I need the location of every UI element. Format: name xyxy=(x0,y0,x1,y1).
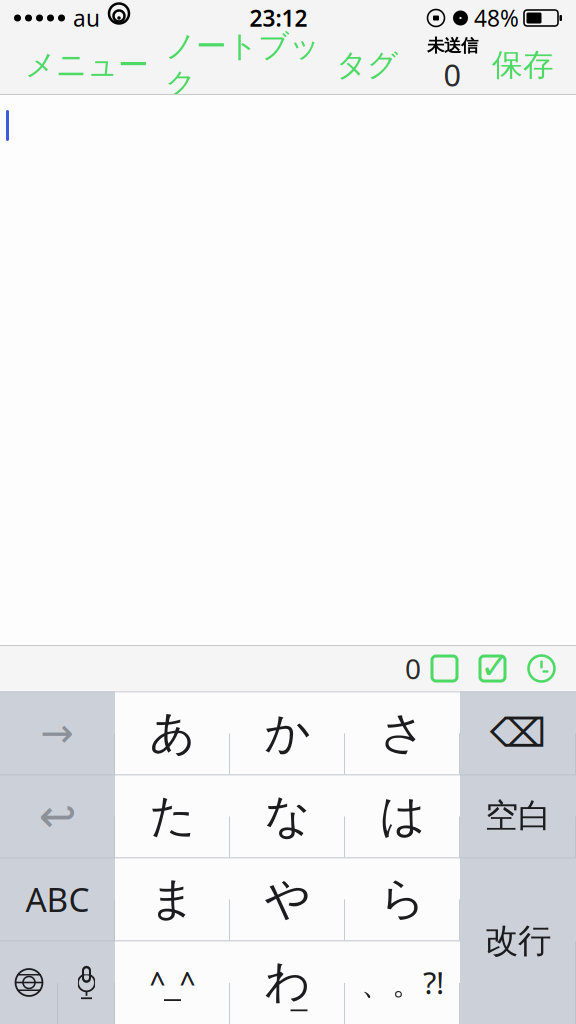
staticText: あ xyxy=(149,705,195,761)
button[interactable]: さ xyxy=(345,691,460,774)
button[interactable]: わ xyxy=(230,940,345,1024)
staticText: ま xyxy=(149,871,195,927)
staticText: な xyxy=(264,788,310,844)
staticText: さ xyxy=(379,705,425,761)
staticText: か xyxy=(264,705,310,761)
button[interactable]: か xyxy=(230,691,345,774)
button[interactable]: メニュー xyxy=(17,37,157,93)
staticText: 空白 xyxy=(485,795,551,836)
staticText: わ xyxy=(264,954,310,1009)
staticText: ABC xyxy=(25,877,89,921)
button[interactable]: Delete xyxy=(460,691,576,774)
staticText: ⌫ xyxy=(489,710,546,756)
button[interactable]: ま xyxy=(115,857,230,940)
button[interactable]: Undo xyxy=(0,774,115,857)
button[interactable]: タグ xyxy=(328,37,406,93)
button[interactable]: 未送信 xyxy=(421,35,484,95)
button[interactable]: あ xyxy=(115,691,230,774)
staticText: ^ ^ xyxy=(149,964,195,1001)
staticText: 23:12 xyxy=(249,3,307,33)
staticText: ↩ xyxy=(38,790,76,842)
button[interactable]: Checked checkbox xyxy=(468,646,517,691)
staticText: メニュー xyxy=(25,46,149,84)
button[interactable]: 保存 xyxy=(484,37,562,93)
button[interactable]: Next keyboard xyxy=(0,940,58,1024)
staticText: 0 xyxy=(443,54,461,95)
button[interactable]: ノートブック xyxy=(157,18,328,112)
button[interactable]: 空白 xyxy=(460,774,576,857)
button[interactable]: 、。?! xyxy=(345,940,460,1024)
button[interactable]: ABC xyxy=(0,857,115,940)
button[interactable]: Emoticon xyxy=(115,940,230,1024)
button[interactable]: Insert time xyxy=(517,646,566,691)
staticText: ノートブック xyxy=(165,27,320,103)
staticText: 0 xyxy=(405,650,421,687)
button[interactable]: や xyxy=(230,857,345,940)
button[interactable]: Next candidate xyxy=(0,691,115,774)
button[interactable]: た xyxy=(115,774,230,857)
staticText: 、。?! xyxy=(361,962,444,1003)
button[interactable]: 改行 xyxy=(460,857,576,1024)
staticText: → xyxy=(40,710,74,756)
staticText: ら xyxy=(379,871,425,927)
staticText: 未送信 xyxy=(427,35,478,56)
staticText: au xyxy=(73,3,100,33)
staticText: ✓ xyxy=(480,647,509,686)
button[interactable]: Dictation xyxy=(58,940,115,1024)
button[interactable]: は xyxy=(345,774,460,857)
staticText: や xyxy=(264,871,310,927)
staticText: 改行 xyxy=(485,920,551,961)
staticText: 保存 xyxy=(492,46,554,84)
button[interactable]: ら xyxy=(345,857,460,940)
button[interactable]: Checkbox xyxy=(421,647,468,690)
staticText: た xyxy=(149,788,195,844)
staticText: 48% xyxy=(474,3,519,33)
button[interactable]: な xyxy=(230,774,345,857)
staticText: タグ xyxy=(336,46,398,84)
staticText: は xyxy=(379,788,425,844)
